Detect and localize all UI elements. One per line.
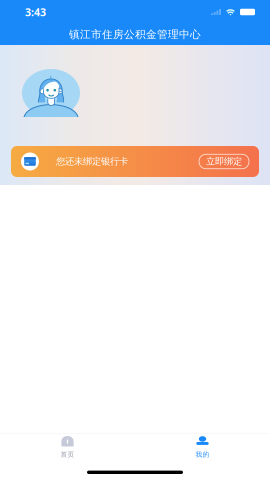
button[interactable]: 首页 [0, 434, 135, 461]
staticText: 3:43 [25, 5, 46, 19]
staticText: 我的 [195, 450, 209, 459]
staticText: 镇江市住房公积金管理中心 [69, 28, 201, 41]
button[interactable]: 您还未绑定银行卡 [11, 146, 259, 177]
staticText: 您还未绑定银行卡 [56, 156, 128, 167]
staticText: 首页 [60, 450, 74, 459]
button[interactable]: 我的 [135, 434, 270, 461]
staticText: 立即绑定 [206, 156, 242, 167]
